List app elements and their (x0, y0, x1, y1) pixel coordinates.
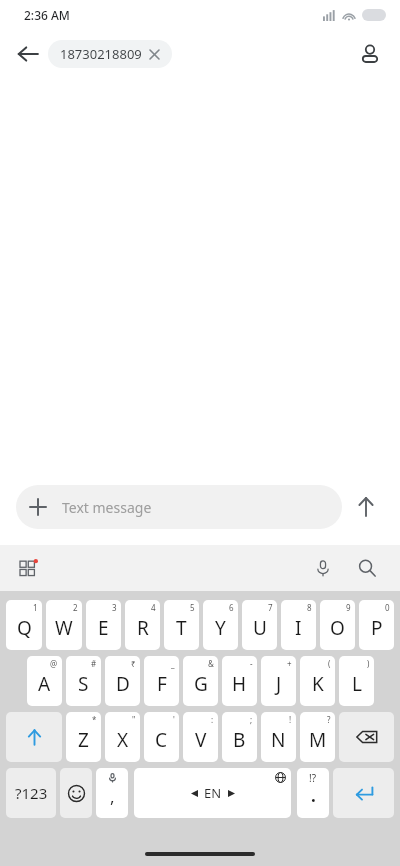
button[interactable]: Comma (96, 768, 128, 818)
button[interactable]: 18730218809 (48, 40, 172, 68)
staticText: 0 (385, 602, 390, 613)
staticText: * (92, 714, 97, 725)
staticText: U (253, 615, 267, 641)
button[interactable]: 7 (242, 600, 277, 650)
button[interactable]: Shift (6, 712, 62, 762)
staticText: W (55, 615, 73, 641)
staticText: D (116, 671, 130, 697)
button[interactable]: ! (261, 712, 296, 762)
button[interactable]: Voice input (306, 551, 340, 585)
staticText: 9 (346, 602, 351, 613)
staticText: 4 (151, 602, 156, 613)
button[interactable]: Period (297, 768, 329, 818)
staticText: B (233, 727, 246, 753)
staticText: J (276, 671, 282, 697)
button[interactable]: 9 (320, 600, 355, 650)
staticText: 18730218809 (60, 45, 142, 63)
button[interactable]: 4 (125, 600, 160, 650)
staticText: # (91, 658, 97, 669)
button[interactable]: ? (300, 712, 335, 762)
staticText: F (157, 671, 167, 697)
button[interactable]: # (66, 656, 101, 706)
staticText: X (117, 727, 129, 753)
staticText: EN (204, 784, 222, 802)
button[interactable]: 3 (86, 600, 121, 650)
staticText: _ (171, 658, 175, 669)
staticText: K (312, 671, 324, 697)
button[interactable]: 0 (359, 600, 394, 650)
staticText: T (176, 615, 187, 641)
staticText: 3 (112, 602, 117, 613)
staticText: ? (327, 714, 331, 725)
button[interactable]: Send (342, 483, 390, 531)
button[interactable]: ) (339, 656, 374, 706)
button[interactable]: 2 (46, 600, 82, 650)
button[interactable]: Emoji (60, 768, 92, 818)
button[interactable]: & (183, 656, 218, 706)
staticText: 5 (190, 602, 195, 613)
button[interactable]: 1 (6, 600, 42, 650)
button[interactable]: Space (134, 768, 291, 818)
staticText: 2 (73, 602, 78, 613)
staticText: Text message (62, 498, 152, 517)
staticText: ?123 (15, 783, 48, 803)
button[interactable]: Enter (333, 768, 394, 818)
button[interactable]: _ (144, 656, 179, 706)
button[interactable]: @ (27, 656, 62, 706)
staticText: E (98, 615, 109, 641)
staticText: N (271, 727, 286, 753)
staticText: . (311, 784, 316, 807)
staticText: @ (50, 658, 58, 669)
staticText: 2:36 AM (24, 7, 70, 23)
staticText: " (132, 714, 136, 725)
button[interactable]: Toolbar (14, 553, 44, 583)
staticText: S (78, 671, 89, 697)
staticText: Q (17, 615, 32, 641)
staticText: A (38, 671, 51, 697)
button[interactable]: Contact details (350, 34, 390, 74)
button[interactable]: 6 (203, 600, 238, 650)
button[interactable]: : (183, 712, 218, 762)
staticText: M (309, 727, 327, 753)
staticText: , (110, 785, 115, 808)
staticText: P (371, 615, 383, 641)
button[interactable]: 8 (281, 600, 316, 650)
staticText: ' (173, 714, 175, 725)
staticText: V (195, 727, 207, 753)
button[interactable]: Backspace (339, 712, 394, 762)
button[interactable]: " (105, 712, 140, 762)
staticText: : (211, 714, 214, 725)
staticText: & (208, 658, 214, 669)
button[interactable]: Back (8, 34, 48, 74)
button[interactable]: ; (222, 712, 257, 762)
button[interactable]: + (261, 656, 296, 706)
staticText: + (287, 658, 292, 669)
staticText: L (352, 671, 362, 697)
button[interactable]: ' (144, 712, 179, 762)
button[interactable]: Text message (16, 485, 342, 529)
staticText: R (137, 615, 149, 641)
staticText: I (295, 615, 302, 641)
button[interactable]: 5 (164, 600, 199, 650)
button[interactable]: ?123 (6, 768, 56, 818)
staticText: !? (309, 771, 317, 785)
staticText: O (330, 615, 345, 641)
staticText: H (232, 671, 247, 697)
staticText: ( (328, 658, 331, 669)
staticText: ; (250, 714, 253, 725)
staticText: - (250, 658, 253, 669)
button[interactable]: ₹ (105, 656, 140, 706)
staticText: ) (367, 658, 370, 669)
staticText: ₹ (131, 658, 136, 669)
button[interactable]: * (66, 712, 101, 762)
staticText: 1 (33, 602, 38, 613)
staticText: Z (78, 727, 89, 753)
staticText: C (155, 727, 168, 753)
staticText: 6 (229, 602, 234, 613)
staticText: ! (289, 714, 292, 725)
staticText: Y (215, 615, 226, 641)
staticText: G (194, 671, 208, 697)
button[interactable]: ( (300, 656, 335, 706)
button[interactable]: - (222, 656, 257, 706)
button[interactable]: Search (350, 551, 384, 585)
